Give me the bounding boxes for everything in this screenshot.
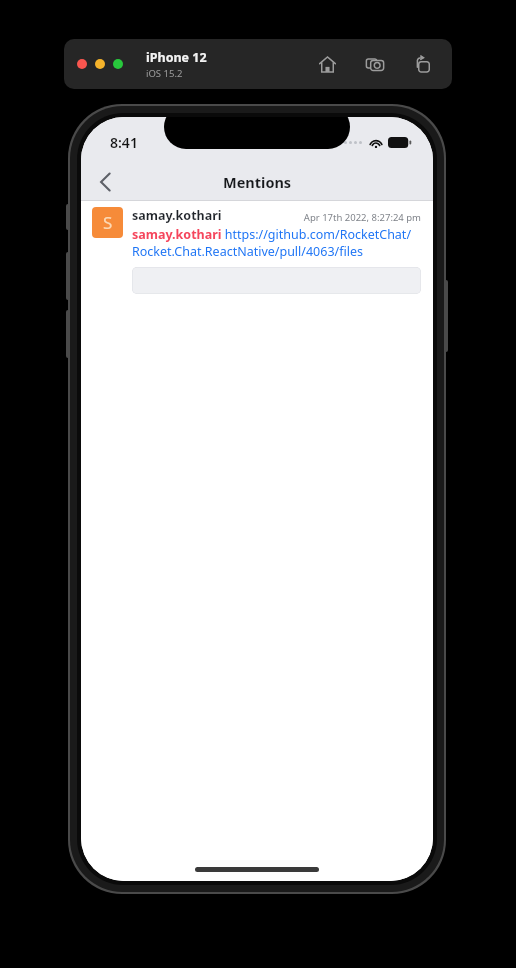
button[interactable]: Screenshot — [360, 49, 390, 79]
button[interactable] — [95, 59, 105, 69]
staticText: S — [103, 211, 113, 234]
staticText: 8:41 — [110, 133, 138, 152]
staticText: samay.kothari https://github.com/RocketC… — [132, 226, 421, 259]
button[interactable]: Rotate — [408, 49, 438, 79]
staticText: Apr 17th 2022, 8:27:24 pm — [232, 211, 421, 224]
button[interactable] — [113, 59, 123, 69]
staticText: iPhone 12 — [146, 49, 207, 66]
button[interactable]: Back — [87, 164, 123, 200]
button[interactable]: Home — [312, 49, 342, 79]
staticText: samay.kothari — [132, 207, 222, 224]
staticText: Mentions — [223, 172, 292, 192]
staticText: iOS 15.2 — [146, 67, 183, 80]
button[interactable] — [77, 59, 87, 69]
button[interactable]: S — [81, 201, 433, 300]
